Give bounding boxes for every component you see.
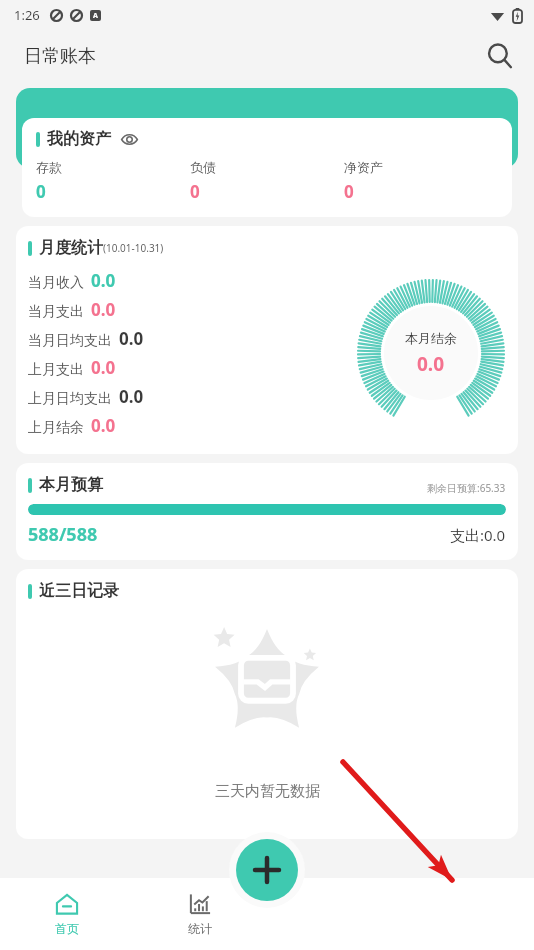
button[interactable]: 我的资产 xyxy=(22,118,512,217)
staticText: 0 xyxy=(36,180,46,203)
staticText: 剩余日预算:65.33 xyxy=(427,481,506,495)
staticText: 月度统计 xyxy=(39,238,103,258)
staticText: 0.0 xyxy=(91,269,116,292)
staticText: 存款 xyxy=(36,159,62,175)
staticText: (10.01-10.31) xyxy=(103,241,164,255)
staticText: 588/588 xyxy=(28,522,98,547)
staticText: 0.0 xyxy=(119,327,144,350)
staticText: 0 xyxy=(190,180,200,203)
staticText: 当月收入 xyxy=(28,274,84,292)
staticText: 上月结余 xyxy=(28,419,84,437)
button[interactable]: Toggle visibility xyxy=(119,129,139,149)
staticText: 本月预算 xyxy=(39,475,103,495)
staticText: 三天内暂无数据 xyxy=(215,782,320,801)
staticText: 首页 xyxy=(55,921,79,936)
staticText: 当月日均支出 xyxy=(28,332,112,350)
button[interactable]: 月度统计 xyxy=(16,226,518,454)
staticText: 当月支出 xyxy=(28,303,84,321)
staticText: 0.0 xyxy=(119,385,144,408)
button[interactable]: Search xyxy=(478,34,522,78)
staticText: 我的资产 xyxy=(47,129,111,149)
staticText: 负债 xyxy=(190,159,216,175)
button[interactable]: Add record xyxy=(236,839,298,901)
staticText: 上月支出 xyxy=(28,361,84,379)
staticText: 净资产 xyxy=(344,159,383,175)
staticText: 统计 xyxy=(188,921,212,936)
button[interactable]: 本月预算 xyxy=(16,463,518,560)
staticText: 本月结余 xyxy=(405,330,457,346)
staticText: 0.0 xyxy=(91,414,116,437)
button[interactable]: 近三日记录 xyxy=(16,569,518,839)
staticText: 近三日记录 xyxy=(39,581,119,601)
staticText: 0 xyxy=(344,180,354,203)
staticText: 0.0 xyxy=(91,298,116,321)
staticText: 1:26 xyxy=(14,6,40,24)
staticText: 支出:0.0 xyxy=(450,525,506,545)
staticText: 日常账本 xyxy=(24,45,96,68)
staticText: 0.0 xyxy=(91,356,116,379)
staticText: 上月日均支出 xyxy=(28,390,112,408)
staticText: 0.0 xyxy=(417,351,445,377)
button[interactable]: 首页 xyxy=(0,878,133,950)
button[interactable]: 统计 xyxy=(133,878,266,950)
staticText: A xyxy=(93,11,98,21)
